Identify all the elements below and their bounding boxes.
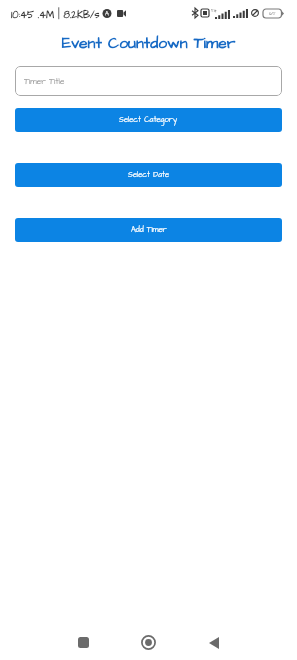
staticText: A: [105, 10, 109, 18]
button[interactable]: Back: [196, 625, 231, 660]
button[interactable]: Home: [131, 625, 166, 660]
staticText: Select Date: [128, 170, 170, 181]
button[interactable]: Add Timer: [15, 218, 282, 242]
staticText: Timer Title: [24, 76, 65, 87]
staticText: 65: [269, 10, 276, 17]
button[interactable]: Select Date: [15, 163, 282, 187]
staticText: Event Countdown Timer: [0, 33, 297, 55]
staticText: Select Category: [119, 115, 178, 126]
button[interactable]: Select Category: [15, 108, 282, 132]
staticText: 10:45 .4M | 8.2KB/s: [11, 8, 100, 22]
staticText: 5G: [211, 8, 217, 14]
staticText: Add Timer: [131, 225, 167, 236]
button[interactable]: Timer Title: [15, 66, 282, 96]
button[interactable]: Recent apps: [66, 625, 101, 660]
